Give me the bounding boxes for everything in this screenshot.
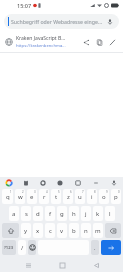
button[interactable]: w bbox=[15, 189, 25, 204]
button[interactable]: d bbox=[33, 206, 43, 221]
button[interactable]: l bbox=[105, 206, 115, 221]
button[interactable]: Voice input bbox=[109, 178, 119, 188]
button[interactable]: z bbox=[63, 189, 73, 204]
staticText: w bbox=[18, 193, 23, 201]
staticText: a bbox=[12, 210, 16, 218]
staticText: ?123 bbox=[4, 245, 14, 251]
button[interactable]: v bbox=[57, 223, 67, 238]
staticText: e bbox=[30, 193, 34, 201]
staticText: o bbox=[102, 193, 106, 201]
staticText: 1 bbox=[10, 190, 12, 194]
button[interactable]: e bbox=[27, 189, 37, 204]
button[interactable]: Clipboard bbox=[21, 178, 31, 188]
button[interactable]: Edit bbox=[106, 36, 119, 49]
button[interactable]: . bbox=[91, 240, 99, 255]
button[interactable]: Home bbox=[55, 258, 69, 272]
staticText: 7 bbox=[82, 190, 84, 194]
button[interactable]: t bbox=[51, 189, 61, 204]
staticText: q bbox=[6, 193, 10, 201]
staticText: v bbox=[60, 227, 64, 235]
staticText: n bbox=[84, 227, 88, 235]
button[interactable]: g bbox=[57, 206, 67, 221]
staticText: 6 bbox=[70, 190, 72, 194]
staticText: y bbox=[24, 227, 28, 235]
button[interactable]: a bbox=[9, 206, 19, 221]
staticText: 8 bbox=[94, 190, 96, 194]
button[interactable]: y bbox=[21, 223, 31, 238]
staticText: u bbox=[78, 193, 82, 201]
staticText: h bbox=[72, 210, 76, 218]
button[interactable]: Back bbox=[89, 258, 103, 272]
staticText: 9 bbox=[106, 190, 108, 194]
button[interactable]: x bbox=[33, 223, 43, 238]
button[interactable]: Emoji bbox=[28, 240, 36, 255]
staticText: Kraken JavaScript B... bbox=[16, 35, 66, 42]
staticText: i bbox=[91, 193, 93, 201]
button[interactable]: c bbox=[45, 223, 55, 238]
staticText: 4 bbox=[46, 190, 48, 194]
button[interactable]: m bbox=[93, 223, 103, 238]
staticText: g bbox=[60, 210, 64, 218]
button[interactable]: Settings bbox=[38, 178, 48, 188]
staticText: 0 bbox=[118, 190, 120, 194]
staticText: c bbox=[49, 227, 52, 235]
button[interactable]: Enter bbox=[101, 240, 121, 255]
staticText: 2 bbox=[22, 190, 24, 194]
button[interactable]: j bbox=[81, 206, 91, 221]
button[interactable]: Suchbegriff oder Webadresse eingeben bbox=[4, 14, 119, 29]
button[interactable]: Recents bbox=[21, 258, 35, 272]
button[interactable]: q bbox=[2, 189, 13, 204]
staticText: 3 bbox=[34, 190, 36, 194]
staticText: https://krakenbenchma... bbox=[16, 43, 66, 49]
button[interactable]: Copy bbox=[93, 36, 106, 49]
staticText: / bbox=[21, 244, 24, 252]
button[interactable]: k bbox=[93, 206, 103, 221]
button[interactable]: h bbox=[69, 206, 79, 221]
button[interactable]: More bbox=[91, 178, 101, 188]
button[interactable]: ?123 bbox=[2, 240, 16, 255]
button[interactable]: p bbox=[111, 189, 121, 204]
staticText: z bbox=[67, 193, 70, 201]
staticText: 15:07 bbox=[17, 2, 32, 9]
staticText: m bbox=[95, 227, 101, 235]
button[interactable]: u bbox=[75, 189, 85, 204]
staticText: . bbox=[94, 244, 96, 251]
button[interactable]: Shift bbox=[2, 223, 19, 238]
button[interactable]: f bbox=[45, 206, 55, 221]
button[interactable]: Share bbox=[80, 36, 93, 49]
button[interactable]: Backspace bbox=[105, 223, 121, 238]
staticText: Suchbegriff oder Webadresse eingeben bbox=[11, 18, 103, 25]
staticText: k bbox=[96, 210, 100, 218]
staticText: t bbox=[55, 193, 58, 201]
staticText: s bbox=[25, 210, 28, 218]
staticText: r bbox=[43, 193, 46, 201]
staticText: 5 bbox=[58, 190, 60, 194]
staticText: f bbox=[49, 210, 52, 218]
button[interactable]: b bbox=[69, 223, 79, 238]
button[interactable]: o bbox=[99, 189, 109, 204]
staticText: x bbox=[36, 227, 40, 235]
button[interactable]: / bbox=[18, 240, 26, 255]
button[interactable]: GIF bbox=[73, 178, 83, 188]
button[interactable]: Kraken JavaScript B... bbox=[0, 32, 123, 52]
button[interactable]: Google bbox=[4, 178, 14, 188]
staticText: l bbox=[109, 210, 111, 218]
staticText: j bbox=[85, 210, 87, 218]
button[interactable]: r bbox=[39, 189, 49, 204]
staticText: p bbox=[114, 193, 118, 201]
staticText: d bbox=[36, 210, 40, 218]
staticText: b bbox=[72, 227, 76, 235]
button[interactable]: s bbox=[21, 206, 31, 221]
button[interactable]: i bbox=[87, 189, 97, 204]
button[interactable]: Voice search bbox=[105, 17, 115, 27]
button[interactable]: Stickers bbox=[55, 178, 65, 188]
button[interactable]: n bbox=[81, 223, 91, 238]
